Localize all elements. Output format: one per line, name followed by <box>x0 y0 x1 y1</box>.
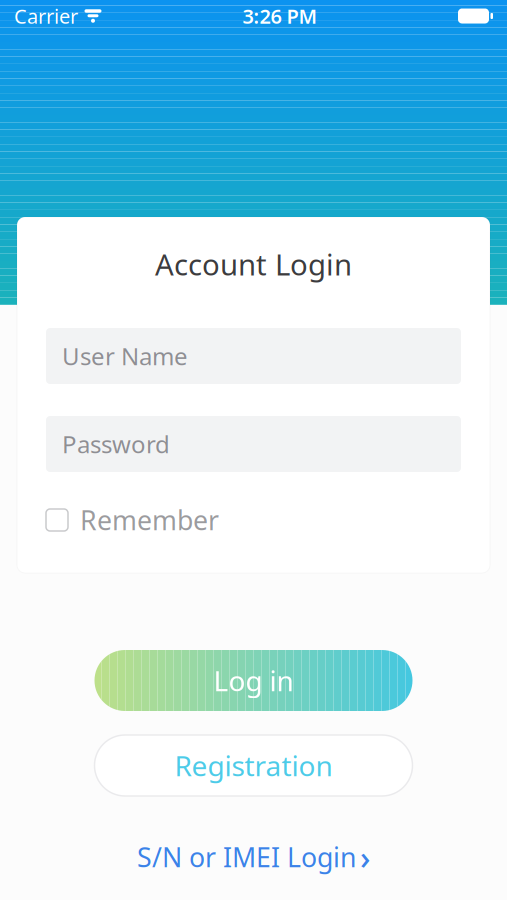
button[interactable]: Log in <box>94 650 412 711</box>
button[interactable]: Remember <box>46 505 461 535</box>
staticText: Registration <box>174 747 332 784</box>
staticText: Carrier <box>14 3 78 29</box>
staticText: › <box>360 836 370 878</box>
staticText: User Name <box>62 340 188 372</box>
staticText: Account Login <box>155 244 352 283</box>
staticText: Password <box>62 428 170 460</box>
button[interactable]: Registration <box>94 735 412 796</box>
staticText: Log in <box>213 662 293 699</box>
staticText: S/N or IMEI Login <box>137 839 356 875</box>
staticText: Remember <box>80 502 219 538</box>
button[interactable]: S/N or IMEI Login <box>127 840 380 874</box>
staticText: 3:26 PM <box>242 3 317 29</box>
